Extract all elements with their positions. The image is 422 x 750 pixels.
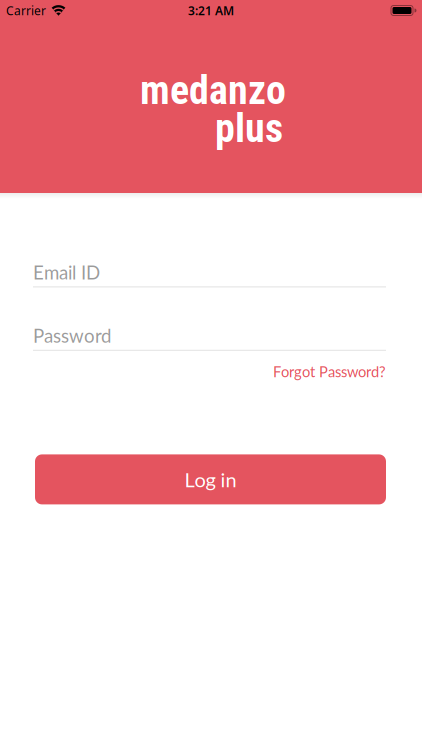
staticText: Log in	[184, 467, 236, 491]
staticText: plus	[215, 105, 283, 152]
staticText: Carrier	[6, 2, 46, 18]
button[interactable]: Password	[33, 324, 386, 351]
staticText: Forgot Password?	[273, 363, 386, 380]
button[interactable]: Forgot Password?	[273, 363, 386, 380]
staticText: medanzo	[140, 67, 286, 114]
button[interactable]: Email ID	[33, 261, 386, 287]
staticText: 3:21 AM	[188, 2, 234, 18]
button[interactable]: Log in	[35, 454, 386, 504]
staticText: Email ID	[33, 261, 100, 283]
staticText: Password	[33, 324, 111, 347]
